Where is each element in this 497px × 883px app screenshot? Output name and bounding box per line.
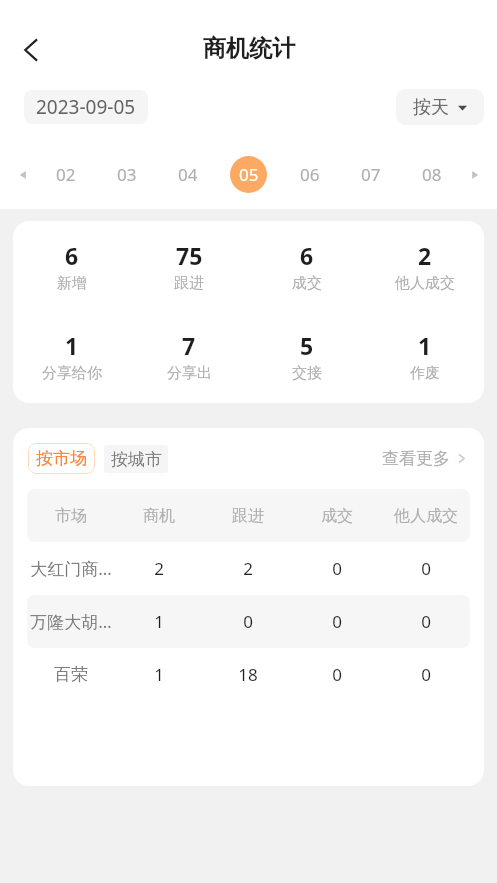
staticText: 0 — [421, 557, 431, 580]
staticText: 06 — [300, 163, 320, 186]
staticText: 03 — [117, 163, 137, 186]
staticText: 1 — [65, 330, 79, 361]
staticText: 1 — [154, 663, 164, 686]
staticText: 6 — [300, 240, 314, 271]
button[interactable]: Back — [9, 28, 53, 72]
staticText: 0 — [421, 610, 431, 633]
staticText: 查看更多 — [382, 448, 450, 469]
staticText: 他人成交 — [394, 506, 458, 526]
button[interactable]: 按天 — [396, 89, 484, 125]
button[interactable]: 百荣 — [27, 648, 470, 701]
button[interactable]: 2023-09-05 — [24, 90, 148, 124]
staticText: 0 — [243, 610, 253, 633]
staticText: 成交 — [321, 506, 353, 526]
staticText: 他人成交 — [395, 274, 455, 293]
staticText: 成交 — [292, 274, 322, 293]
staticText: 0 — [332, 557, 342, 580]
button[interactable]: 大红门商… — [27, 542, 470, 595]
button[interactable]: 04 — [157, 156, 218, 193]
staticText: 按天 — [413, 96, 449, 119]
staticText: 万隆大胡… — [30, 610, 112, 633]
staticText: 0 — [332, 663, 342, 686]
button[interactable]: 万隆大胡… — [27, 595, 470, 648]
staticText: 1 — [154, 610, 164, 633]
staticText: 商机统计 — [203, 34, 295, 63]
staticText: 2 — [418, 240, 432, 271]
staticText: 6 — [65, 240, 79, 271]
staticText: 7 — [182, 330, 196, 361]
staticText: 分享给你 — [42, 364, 102, 383]
button[interactable]: 03 — [96, 156, 157, 193]
staticText: 按城市 — [111, 449, 162, 470]
staticText: 0 — [332, 610, 342, 633]
button[interactable]: 按市场 — [28, 443, 95, 474]
staticText: 跟进 — [232, 506, 264, 526]
button[interactable]: 06 — [279, 156, 340, 193]
staticText: 2023-09-05 — [36, 94, 136, 120]
staticText: 5 — [300, 330, 314, 361]
staticText: 07 — [361, 163, 381, 186]
staticText: 1 — [418, 330, 432, 361]
button[interactable]: 按城市 — [104, 445, 168, 473]
staticText: 2 — [243, 557, 253, 580]
staticText: 2 — [154, 557, 164, 580]
staticText: 分享出 — [167, 364, 212, 383]
staticText: 百荣 — [54, 664, 88, 685]
staticText: 交接 — [292, 364, 322, 383]
staticText: 08 — [422, 163, 442, 186]
button[interactable]: 08 — [401, 156, 462, 193]
staticText: 作废 — [410, 364, 440, 383]
button[interactable]: 05 — [218, 156, 279, 193]
staticText: 18 — [238, 663, 258, 686]
staticText: 75 — [176, 240, 203, 271]
staticText: 05 — [239, 163, 259, 186]
staticText: 0 — [421, 663, 431, 686]
staticText: 跟进 — [174, 274, 204, 293]
staticText: 商机 — [143, 506, 175, 526]
staticText: 04 — [178, 163, 198, 186]
button[interactable]: Next day — [462, 162, 487, 187]
staticText: 02 — [56, 163, 76, 186]
button[interactable]: 07 — [340, 156, 401, 193]
staticText: 市场 — [55, 506, 87, 526]
staticText: 按市场 — [36, 448, 87, 469]
button[interactable]: 查看更多 — [382, 448, 469, 469]
button[interactable]: 02 — [35, 156, 96, 193]
button[interactable]: Previous day — [10, 162, 35, 187]
staticText: 新增 — [57, 274, 87, 293]
staticText: 大红门商… — [30, 557, 112, 580]
